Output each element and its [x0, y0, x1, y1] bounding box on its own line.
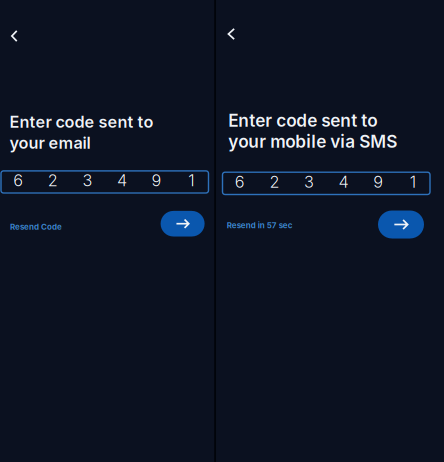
staticText: 3	[304, 172, 314, 192]
staticText: Enter code sent to	[228, 110, 377, 131]
staticText: 6	[13, 171, 23, 190]
button[interactable]: Back	[0, 21, 29, 51]
staticText: 1	[188, 171, 194, 190]
staticText: your email	[10, 133, 91, 153]
staticText: 6	[235, 172, 245, 192]
staticText: 2	[269, 172, 279, 192]
staticText: 1	[410, 172, 416, 192]
button[interactable]: Resend in 57 sec	[227, 220, 293, 230]
staticText: Enter code sent to	[10, 112, 154, 132]
staticText: Resend in 57 sec	[227, 220, 293, 230]
button[interactable]: Continue	[378, 210, 424, 238]
button[interactable]: Back	[216, 19, 246, 49]
staticText: your mobile via SMS	[228, 131, 397, 152]
staticText: 9	[152, 171, 162, 190]
staticText: 4	[117, 171, 127, 190]
button[interactable]: Resend Code	[10, 222, 62, 232]
staticText: Resend Code	[10, 222, 62, 232]
staticText: 4	[338, 172, 348, 192]
button[interactable]: Continue	[161, 211, 205, 236]
staticText: 3	[82, 171, 92, 190]
staticText: 9	[373, 172, 383, 192]
staticText: 2	[48, 171, 58, 190]
